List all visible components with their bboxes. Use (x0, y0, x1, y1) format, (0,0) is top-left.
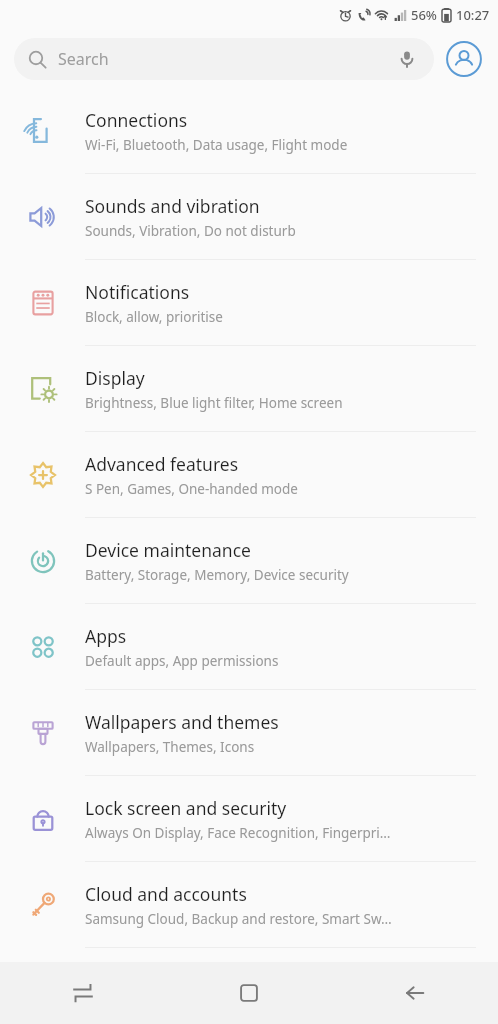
button[interactable]: Search (14, 38, 434, 80)
button[interactable]: Notifications (0, 260, 498, 346)
staticText: Cloud and accounts (85, 882, 247, 906)
staticText: Wallpapers and themes (85, 710, 279, 734)
staticText: Lock screen and security (85, 796, 287, 820)
staticText: Apps (85, 624, 127, 648)
staticText: Wallpapers, Themes, Icons (85, 738, 255, 756)
staticText: Device maintenance (85, 538, 251, 562)
staticText: Always On Display, Face Recognition, Fin… (85, 824, 391, 842)
button[interactable]: Connections (0, 88, 498, 174)
button[interactable]: Voice search (394, 46, 420, 72)
button[interactable]: Home (166, 962, 332, 1024)
staticText: Samsung Cloud, Backup and restore, Smart… (85, 910, 392, 928)
button[interactable]: Lock screen and security (0, 776, 498, 862)
staticText: Wi-Fi, Bluetooth, Data usage, Flight mod… (85, 136, 348, 154)
staticText: Notifications (85, 280, 190, 304)
button[interactable]: Back (332, 962, 498, 1024)
button[interactable]: Device maintenance (0, 518, 498, 604)
button[interactable]: Cloud and accounts (0, 862, 498, 948)
button[interactable]: Wallpapers and themes (0, 690, 498, 776)
staticText: Advanced features (85, 452, 239, 476)
staticText: Default apps, App permissions (85, 652, 279, 670)
staticText: Display (85, 366, 145, 390)
button[interactable]: Apps (0, 604, 498, 690)
button[interactable]: Sounds and vibration (0, 174, 498, 260)
button[interactable]: Advanced features (0, 432, 498, 518)
staticText: Block, allow, prioritise (85, 308, 223, 326)
staticText: S Pen, Games, One-handed mode (85, 480, 298, 498)
staticText: 10:27 (456, 6, 490, 24)
staticText: Brightness, Blue light filter, Home scre… (85, 394, 343, 412)
button[interactable]: Recents (0, 962, 166, 1024)
staticText: Sounds and vibration (85, 194, 260, 218)
staticText: 56% (411, 6, 437, 24)
staticText: Search (58, 48, 394, 70)
staticText: Connections (85, 108, 188, 132)
staticText: Sounds, Vibration, Do not disturb (85, 222, 296, 240)
staticText: Battery, Storage, Memory, Device securit… (85, 566, 349, 584)
button[interactable]: Display (0, 346, 498, 432)
button[interactable]: Account (444, 39, 484, 79)
